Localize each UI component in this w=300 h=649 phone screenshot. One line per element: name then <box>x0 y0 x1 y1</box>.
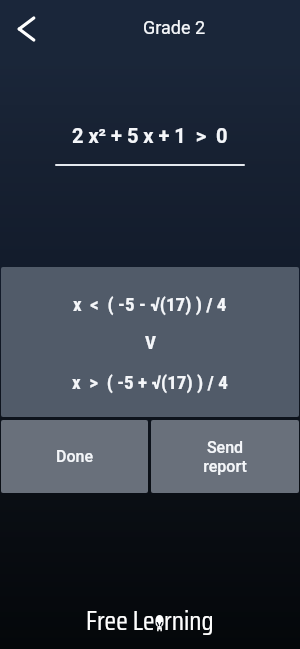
button[interactable]: Send report <box>151 420 299 493</box>
staticText: Grade 2 <box>143 17 206 38</box>
staticText: V <box>145 331 156 353</box>
button[interactable]: Back <box>0 3 52 55</box>
button[interactable]: Free Le <box>86 599 214 641</box>
button[interactable]: Done <box>1 420 148 493</box>
staticText: x > ( -5 + √(17) ) / 4 <box>72 371 228 393</box>
staticText: x < ( -5 - √(17) ) / 4 <box>73 293 227 315</box>
staticText: Send report <box>203 438 247 476</box>
staticText: Done <box>56 447 93 466</box>
staticText: Free Le <box>86 599 155 641</box>
staticText: rning <box>164 599 214 641</box>
staticText: 2 x² + 5 x + 1 > 0 <box>72 124 228 147</box>
